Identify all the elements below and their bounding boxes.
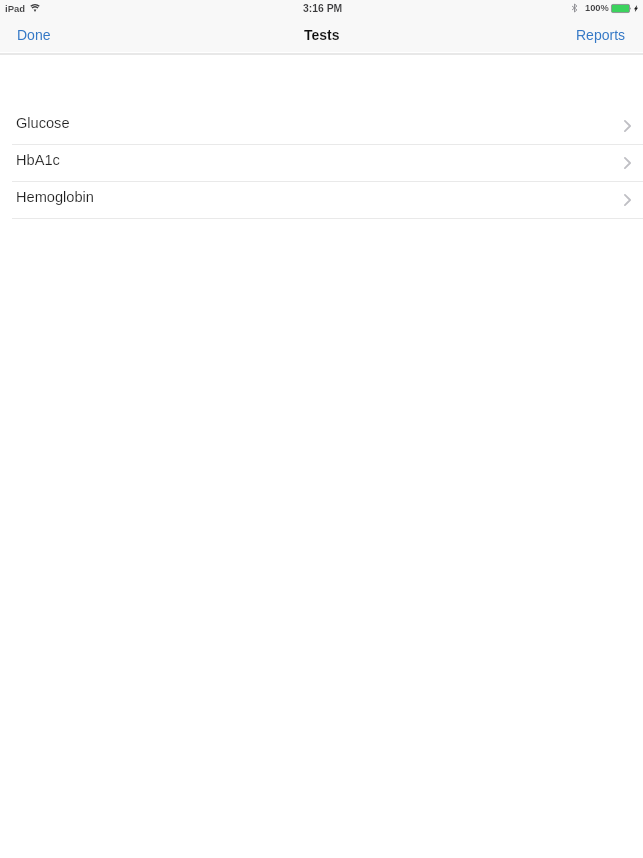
staticText: Tests [304,27,340,43]
staticText: 3:16 PM [303,3,343,15]
button[interactable]: Done [0,19,65,52]
button[interactable]: HbA1c [0,145,643,181]
button[interactable]: Hemoglobin [0,182,643,218]
staticText: Glucose [16,115,70,131]
staticText: iPad [5,3,26,14]
staticText: 100% [585,3,609,13]
staticText: HbA1c [16,152,60,168]
button[interactable]: Glucose [0,108,643,144]
staticText: Reports [576,27,626,43]
staticText: Done [17,27,51,43]
staticText: Hemoglobin [16,189,94,205]
button[interactable]: Reports [562,19,643,52]
